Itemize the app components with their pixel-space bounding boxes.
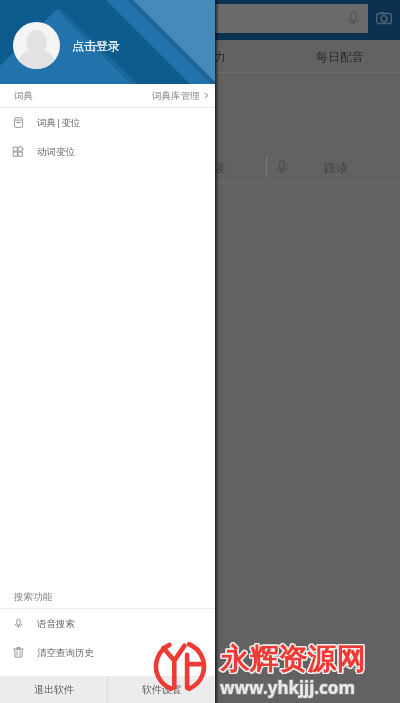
staticText: 点击登录 (72, 38, 120, 53)
staticText: www.yhkjjj.com (221, 675, 356, 698)
staticText: 每日配音 (316, 49, 364, 64)
staticText: 永辉资源网 (219, 640, 364, 677)
staticText: www.yhkjjj.com (220, 677, 355, 700)
staticText: www.yhkjjj.com (219, 677, 354, 700)
staticText: www.yhkjjj.com (221, 677, 356, 700)
staticText: www.yhkjjj.com (221, 676, 356, 699)
button[interactable]: 软件设置 (108, 676, 215, 703)
staticText: www.yhkjjj.com (220, 675, 355, 698)
staticText: 永辉资源网 (219, 642, 364, 679)
staticText: 永辉资源网 (221, 642, 366, 679)
button[interactable]: 点击登录 (0, 0, 215, 84)
button[interactable]: 词典|变位 (0, 108, 215, 137)
staticText: 跟读 (324, 160, 348, 175)
staticText: 永辉资源网 (220, 641, 365, 678)
button[interactable]: 词典库管理 (144, 84, 215, 107)
staticText: 清空查询历史 (37, 647, 94, 659)
staticText: 语音搜索 (37, 618, 75, 630)
staticText: 力 (214, 49, 226, 64)
button[interactable]: 清空查询历史 (0, 638, 215, 667)
staticText: 永辉资源网 (220, 642, 365, 679)
staticText: 动词变位 (37, 146, 75, 158)
staticText: 词典|变位 (37, 116, 81, 129)
staticText: 词典 (14, 90, 33, 102)
staticText: 永辉资源网 (219, 641, 364, 678)
staticText: 读 (213, 160, 225, 175)
staticText: 搜索功能 (14, 591, 52, 603)
button[interactable]: 退出软件 (0, 676, 107, 703)
staticText: www.yhkjjj.com (219, 675, 354, 698)
staticText: www.yhkjjj.com (219, 676, 354, 699)
staticText: 永辉资源网 (221, 641, 366, 678)
button[interactable]: Camera search (372, 6, 396, 30)
staticText: 退出软件 (34, 683, 74, 696)
staticText: 永辉资源网 (221, 640, 366, 677)
button[interactable]: 语音搜索 (0, 609, 215, 638)
staticText: 词典库管理 (152, 90, 200, 102)
button[interactable] (18, 4, 368, 33)
staticText: 软件设置 (142, 683, 182, 696)
staticText: 永辉资源网 (220, 640, 365, 677)
staticText: www.yhkjjj.com (220, 676, 355, 699)
button[interactable]: 动词变位 (0, 137, 215, 166)
